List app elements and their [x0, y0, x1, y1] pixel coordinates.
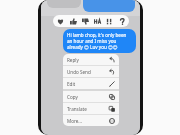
button[interactable]: Copy [63, 91, 119, 102]
button[interactable]: Like [68, 16, 78, 26]
staticText: More... [67, 118, 83, 124]
staticText: Translate [67, 106, 87, 112]
staticText: Reply [67, 57, 79, 63]
button[interactable]: Edit [63, 78, 119, 89]
button[interactable]: Reply [63, 54, 119, 65]
button[interactable]: Love [55, 16, 65, 26]
button[interactable]: Emphasize [104, 16, 114, 26]
button[interactable]: Translate [63, 103, 119, 114]
button[interactable]: Hi lamb chop, it's only been an hour and… [63, 29, 136, 53]
button[interactable]: Question [117, 16, 127, 26]
staticText: Undo Send [67, 69, 91, 75]
staticText: Hi lamb chop, it's only been an hour and… [67, 32, 132, 50]
button[interactable]: Undo Send [63, 66, 119, 77]
button[interactable]: Haha [92, 16, 102, 26]
staticText: Copy [67, 94, 78, 100]
button[interactable]: More... [63, 115, 119, 126]
staticText: Edit [67, 81, 76, 87]
button[interactable]: Dislike [80, 16, 90, 26]
